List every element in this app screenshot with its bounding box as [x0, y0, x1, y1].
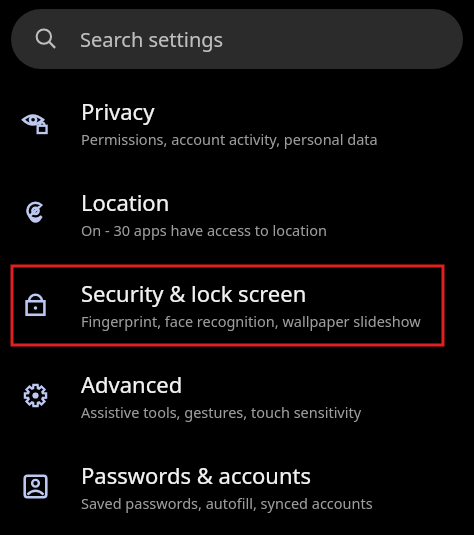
staticText: Assistive tools, gestures, touch sensiti… [81, 402, 362, 422]
staticText: On - 30 apps have access to location [81, 220, 327, 240]
staticText: Privacy [81, 96, 155, 126]
button[interactable]: Location [0, 177, 474, 249]
staticText: Search settings [80, 26, 224, 53]
staticText: Permissions, account activity, personal … [81, 129, 378, 149]
button[interactable]: Security & lock screen [0, 268, 474, 340]
staticText: Saved passwords, autofill, synced accoun… [81, 493, 373, 513]
button[interactable]: Passwords & accounts [0, 450, 474, 522]
staticText: Advanced [81, 369, 183, 399]
button[interactable]: Privacy [0, 86, 474, 158]
staticText: Fingerprint, face recognition, wallpaper… [81, 311, 421, 331]
staticText: Location [81, 187, 170, 217]
button[interactable]: Advanced [0, 359, 474, 431]
staticText: Security & lock screen [81, 278, 307, 308]
button[interactable]: Search settings [11, 9, 463, 69]
staticText: Passwords & accounts [81, 460, 312, 490]
